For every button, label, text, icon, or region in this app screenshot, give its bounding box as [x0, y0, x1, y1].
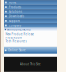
button[interactable]: Downloads [4, 14, 57, 19]
button[interactable]: Press Room [5, 36, 57, 39]
button[interactable]: Solutions [4, 9, 57, 14]
staticText: New Product Release [5, 32, 34, 36]
button[interactable]: Company [4, 23, 57, 28]
button[interactable]: New Product Release [5, 33, 57, 36]
staticText: About This Site [20, 62, 41, 66]
staticText: Tech Resources [5, 39, 26, 43]
staticText: Home [9, 1, 17, 4]
button[interactable]: Products [4, 5, 57, 9]
button[interactable]: Home [4, 0, 57, 5]
button[interactable]: Support [4, 19, 57, 23]
staticText: Company [9, 24, 21, 27]
staticText: Support [9, 19, 20, 23]
staticText: Announcements [7, 28, 30, 31]
staticText: Products [9, 5, 21, 9]
staticText: Online Store [8, 48, 26, 52]
staticText: Downloads [9, 14, 24, 18]
button[interactable]: Online Store [4, 47, 57, 54]
button[interactable]: Tech Resources [5, 39, 57, 43]
staticText: Press Room [5, 36, 21, 39]
staticText: Solutions [9, 10, 22, 13]
